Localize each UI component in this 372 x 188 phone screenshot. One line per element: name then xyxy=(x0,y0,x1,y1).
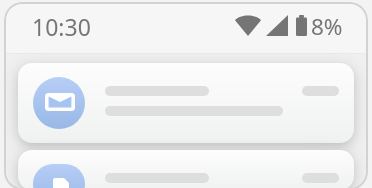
other: Cellular signal xyxy=(266,15,288,36)
button[interactable] xyxy=(18,63,354,143)
button[interactable] xyxy=(18,150,354,188)
staticText: 8% xyxy=(311,11,343,42)
other: Wi-Fi signal xyxy=(235,15,261,36)
staticText: 10:30 xyxy=(32,11,91,42)
other: Battery 8 percent xyxy=(296,15,307,36)
